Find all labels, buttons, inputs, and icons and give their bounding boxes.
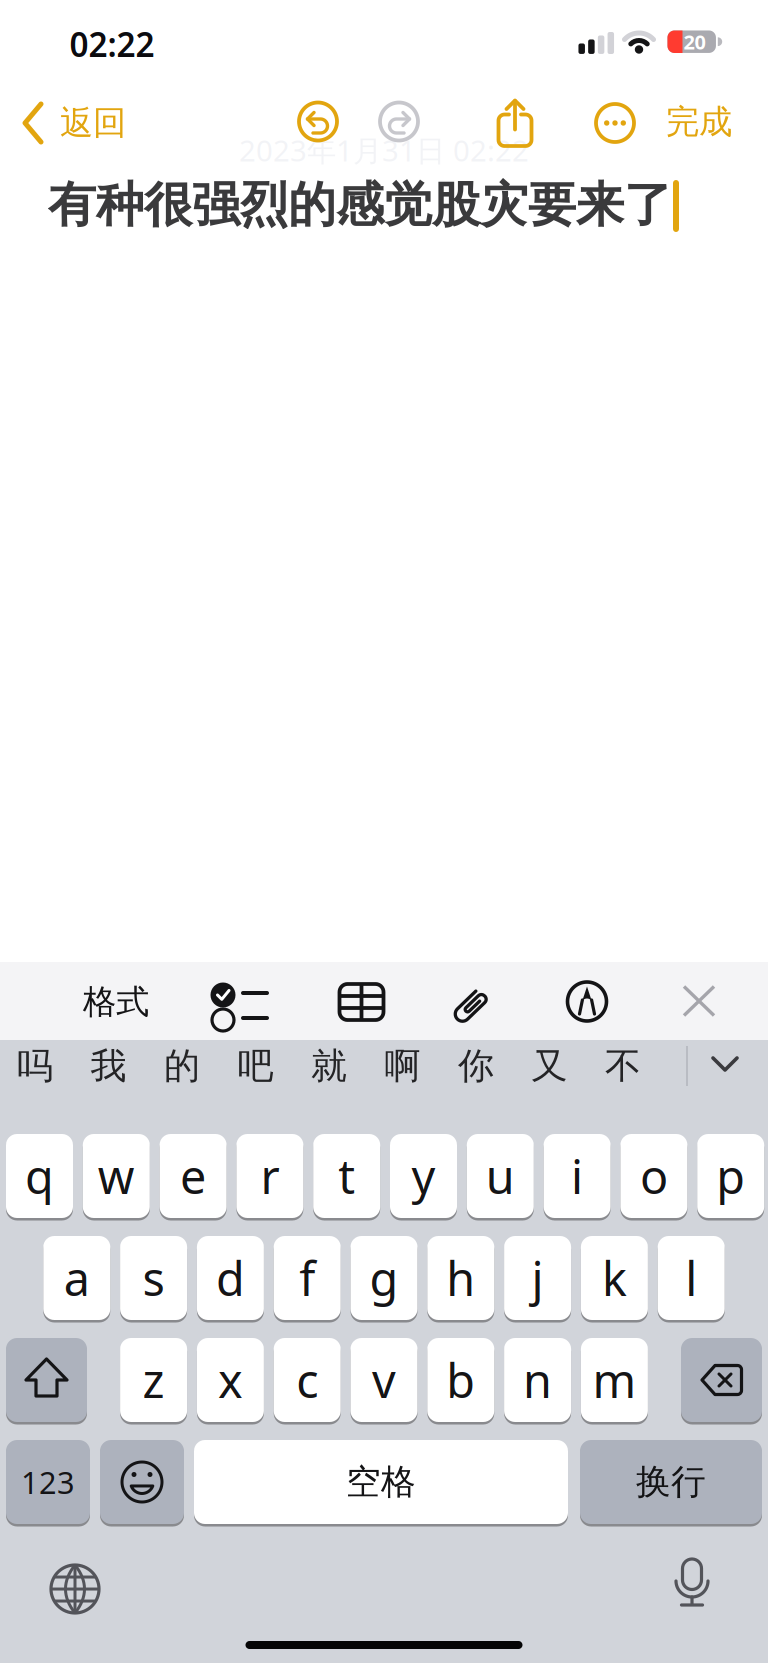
staticText: i xyxy=(571,1145,583,1207)
button[interactable]: 换行 xyxy=(580,1440,762,1524)
button[interactable]: q xyxy=(6,1134,73,1218)
button[interactable]: 表情符号 xyxy=(100,1440,184,1524)
staticText: u xyxy=(486,1145,515,1207)
button[interactable]: 又 xyxy=(516,1035,582,1097)
staticText: g xyxy=(369,1247,398,1309)
staticText: 就 xyxy=(311,1044,347,1088)
button[interactable]: 空格 xyxy=(194,1440,568,1524)
button[interactable]: 的 xyxy=(149,1035,215,1097)
staticText: 吧 xyxy=(237,1044,273,1088)
button[interactable]: n xyxy=(504,1338,571,1422)
button[interactable]: 核对清单 xyxy=(208,972,268,1032)
staticText: 有种很强烈的感觉股灾要来了 xyxy=(48,175,672,234)
staticText: p xyxy=(716,1145,745,1207)
staticText: 不 xyxy=(605,1044,641,1088)
button[interactable]: 格式 xyxy=(71,972,161,1032)
button[interactable]: 返回 xyxy=(15,97,137,149)
button[interactable]: 关闭 xyxy=(677,979,721,1023)
button[interactable]: y xyxy=(390,1134,457,1218)
button[interactable]: w xyxy=(83,1134,150,1218)
button[interactable]: 展开候选字 xyxy=(705,1049,745,1079)
button[interactable]: 表格 xyxy=(331,971,391,1031)
button[interactable]: 附件 xyxy=(446,972,504,1030)
staticText: j xyxy=(532,1247,544,1309)
staticText: k xyxy=(602,1247,627,1309)
button[interactable]: 更多 xyxy=(593,101,637,145)
button[interactable]: v xyxy=(350,1338,417,1422)
button[interactable]: 吧 xyxy=(222,1035,288,1097)
staticText: 吗 xyxy=(17,1044,53,1088)
button[interactable]: 我 xyxy=(75,1035,141,1097)
button[interactable]: d xyxy=(197,1236,264,1320)
button[interactable]: b xyxy=(427,1338,494,1422)
staticText: t xyxy=(338,1145,355,1207)
button[interactable]: k xyxy=(581,1236,648,1320)
button[interactable]: 听写 xyxy=(662,1555,722,1615)
staticText: 又 xyxy=(531,1044,567,1088)
staticText: y xyxy=(411,1145,435,1207)
staticText: 啊 xyxy=(384,1044,420,1088)
staticText: m xyxy=(592,1349,636,1411)
staticText: q xyxy=(25,1145,54,1207)
staticText: 空格 xyxy=(346,1461,416,1503)
staticText: v xyxy=(372,1349,396,1411)
staticText: 的 xyxy=(164,1044,200,1088)
button[interactable]: a xyxy=(43,1236,110,1320)
button[interactable]: 删除 xyxy=(681,1338,762,1422)
button[interactable]: 你 xyxy=(443,1035,509,1097)
button[interactable]: 切换键盘 xyxy=(47,1561,103,1617)
staticText: h xyxy=(446,1247,475,1309)
button[interactable]: x xyxy=(197,1338,264,1422)
button[interactable]: 啊 xyxy=(369,1035,435,1097)
staticText: 格式 xyxy=(83,981,149,1022)
staticText: w xyxy=(98,1145,135,1207)
button[interactable]: i xyxy=(544,1134,611,1218)
button[interactable]: 重做 xyxy=(377,99,421,143)
button[interactable]: 不 xyxy=(590,1035,656,1097)
button[interactable]: g xyxy=(350,1236,417,1320)
button[interactable]: u xyxy=(467,1134,534,1218)
staticText: 02:22 xyxy=(69,22,154,66)
button[interactable]: e xyxy=(160,1134,227,1218)
button[interactable]: Shift xyxy=(6,1338,87,1422)
button[interactable]: o xyxy=(620,1134,687,1218)
button[interactable]: 吗 xyxy=(2,1035,68,1097)
button[interactable]: s xyxy=(120,1236,187,1320)
staticText: d xyxy=(216,1247,245,1309)
button[interactable]: c xyxy=(274,1338,341,1422)
button[interactable]: p xyxy=(697,1134,764,1218)
staticText: r xyxy=(260,1145,279,1207)
staticText: n xyxy=(523,1349,552,1411)
staticText: 返回 xyxy=(60,102,126,143)
button[interactable]: z xyxy=(120,1338,187,1422)
button[interactable]: 就 xyxy=(296,1035,362,1097)
staticText: 你 xyxy=(458,1044,494,1088)
staticText: 换行 xyxy=(636,1461,706,1503)
staticText: 完成 xyxy=(666,101,732,142)
staticText: x xyxy=(218,1349,243,1411)
button[interactable]: f xyxy=(274,1236,341,1320)
button[interactable]: j xyxy=(504,1236,571,1320)
staticText: e xyxy=(180,1145,206,1207)
button[interactable]: 完成 xyxy=(654,96,744,148)
staticText: 123 xyxy=(21,1462,75,1502)
button[interactable]: 共享 xyxy=(496,97,534,149)
button[interactable]: h xyxy=(427,1236,494,1320)
button[interactable]: 标记 xyxy=(565,979,609,1023)
button[interactable]: m xyxy=(581,1338,648,1422)
staticText: b xyxy=(446,1349,475,1411)
staticText: f xyxy=(299,1247,315,1309)
button[interactable]: t xyxy=(313,1134,380,1218)
staticText: c xyxy=(296,1349,318,1411)
staticText: 2023年1月31日 02:22 xyxy=(239,130,529,169)
staticText: o xyxy=(640,1145,668,1207)
staticText: 我 xyxy=(90,1044,126,1088)
staticText: s xyxy=(143,1247,165,1309)
staticText: z xyxy=(143,1349,165,1411)
button[interactable]: 撤销 xyxy=(296,99,340,143)
button[interactable]: r xyxy=(236,1134,303,1218)
button[interactable]: l xyxy=(658,1236,725,1320)
staticText: a xyxy=(64,1247,90,1309)
staticText: l xyxy=(685,1247,697,1309)
button[interactable]: 数字键盘 xyxy=(6,1440,90,1524)
